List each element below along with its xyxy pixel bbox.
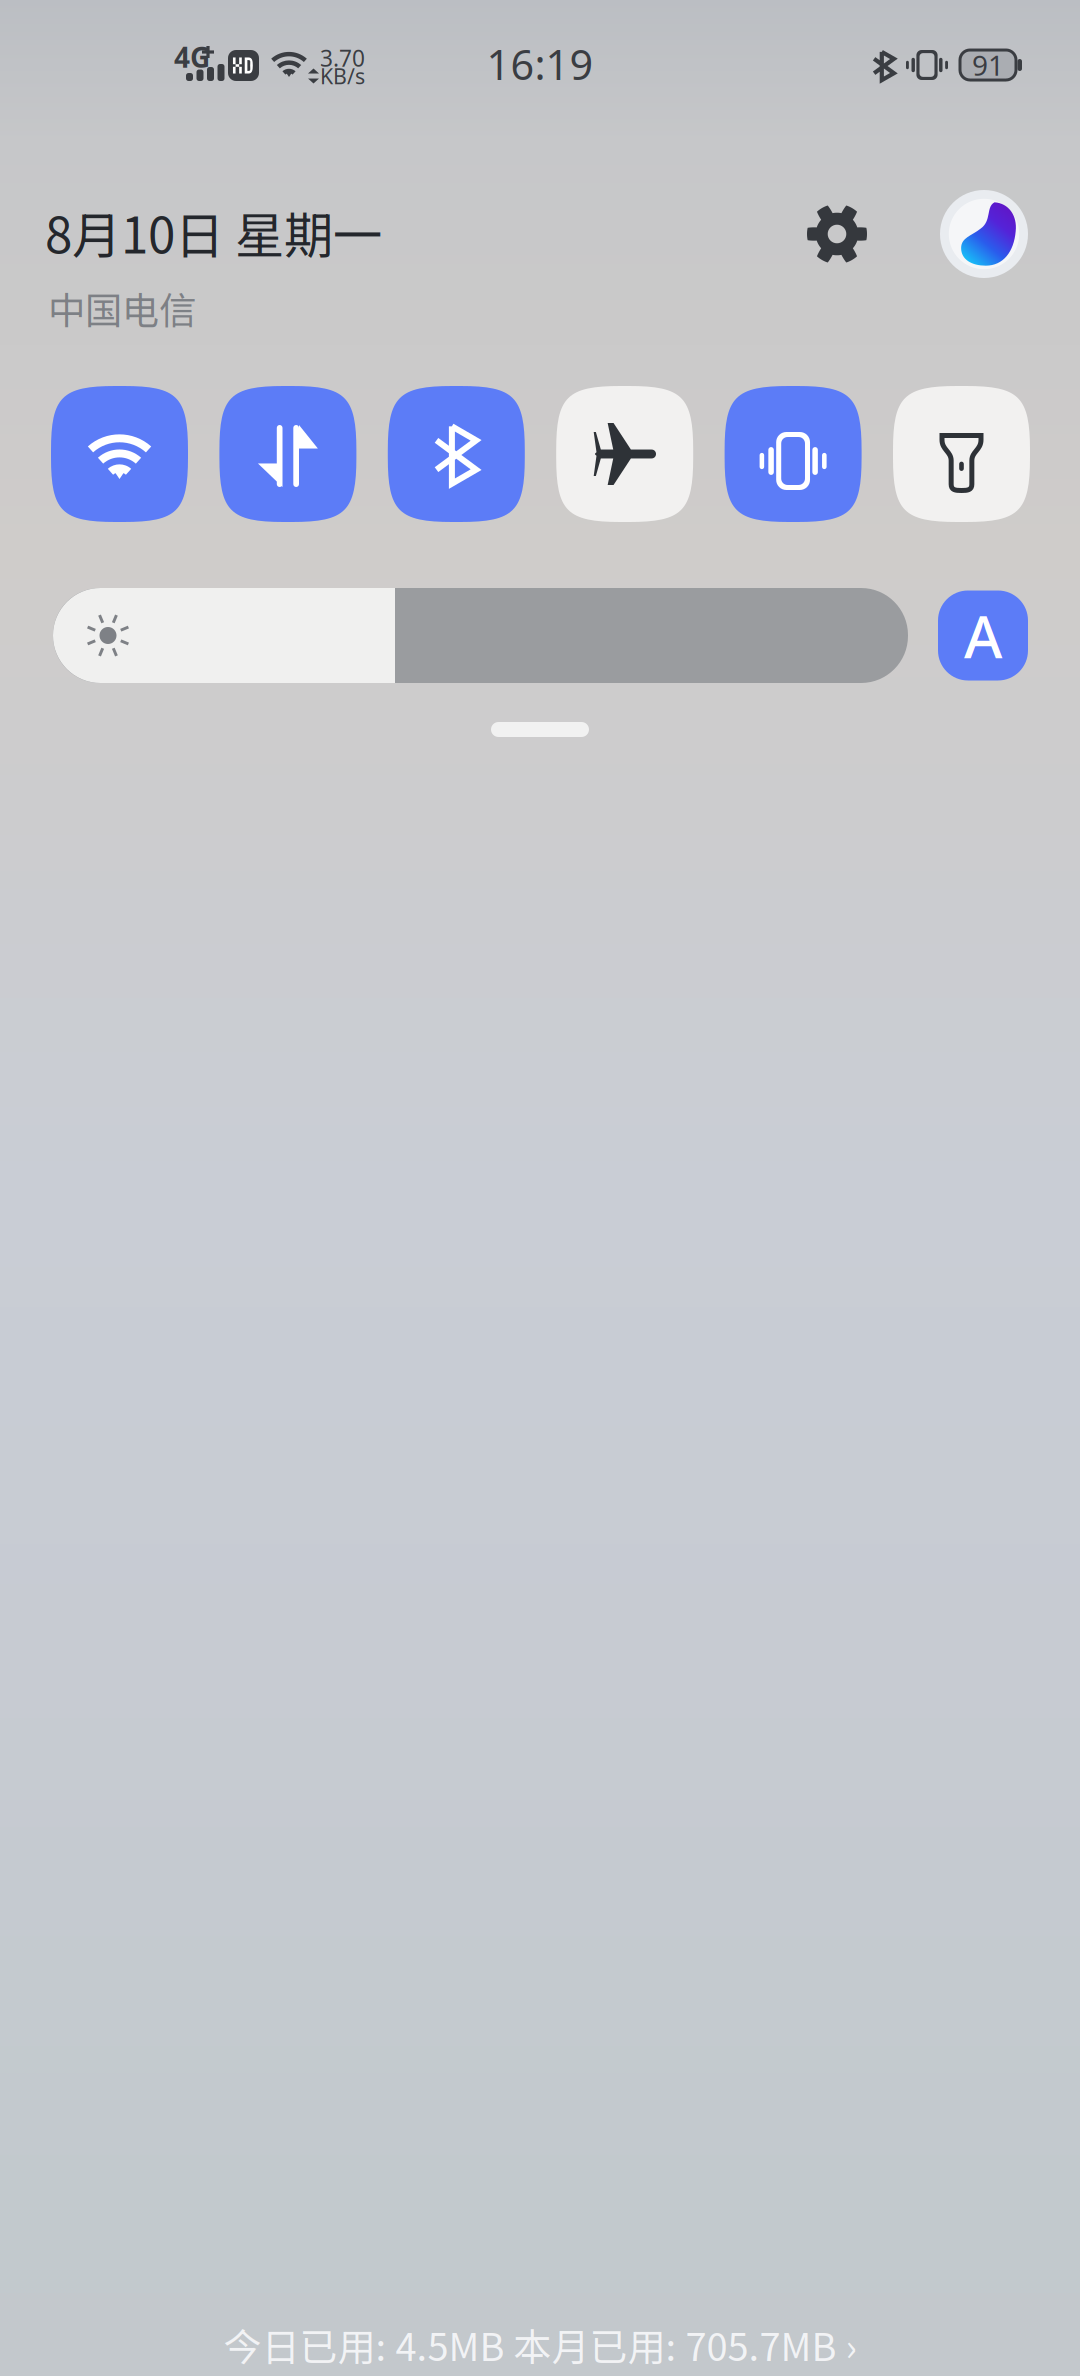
button[interactable]: Vibrate <box>725 386 862 522</box>
button[interactable]: Voice assistant <box>940 190 1028 278</box>
button[interactable]: Wi-Fi <box>51 386 188 522</box>
staticText: A <box>964 596 1002 674</box>
button[interactable]: Brightness <box>53 588 908 683</box>
button[interactable]: Bluetooth <box>388 386 525 522</box>
staticText: 中国电信 <box>48 281 196 335</box>
staticText: 4G <box>174 38 210 76</box>
staticText: 3.70 <box>320 43 365 73</box>
staticText: 16:19 <box>486 37 593 91</box>
staticText: 8月10日 星期一 <box>45 196 382 268</box>
button[interactable]: Settings <box>793 190 881 278</box>
button[interactable]: Mobile data <box>219 386 356 522</box>
button[interactable]: Airplane mode <box>556 386 693 522</box>
staticText: KB/s <box>320 62 365 90</box>
button[interactable]: Auto brightness <box>938 590 1028 680</box>
button[interactable]: 今日已用: 4.5MB 本月已用: 705.7MB › <box>223 2317 856 2372</box>
button[interactable]: Flashlight <box>893 386 1030 522</box>
staticText: 今日已用: 4.5MB 本月已用: 705.7MB › <box>223 2317 856 2372</box>
staticText: 91 <box>972 46 1004 84</box>
